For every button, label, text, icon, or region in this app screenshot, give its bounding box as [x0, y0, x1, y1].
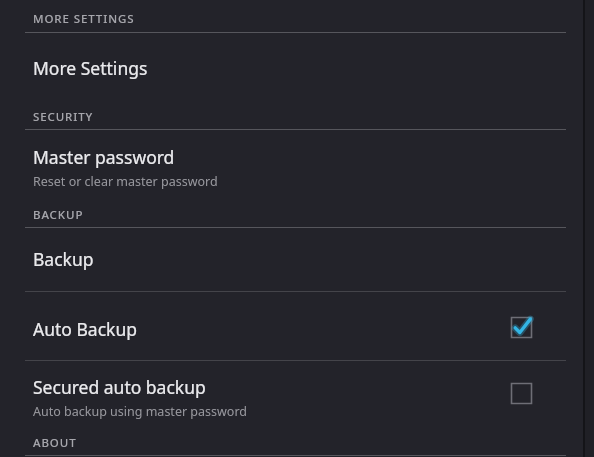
button[interactable]: Backup [0, 228, 594, 291]
staticText: Auto Backup [33, 317, 137, 341]
staticText: MORE SETTINGS [33, 11, 135, 27]
button[interactable]: Auto Backup [0, 292, 594, 360]
button[interactable]: Secured auto backup [0, 361, 594, 429]
staticText: SECURITY [33, 109, 94, 125]
button[interactable]: More Settings [0, 33, 594, 104]
other: Secured auto backup disabled [511, 383, 532, 404]
staticText: Backup [33, 247, 94, 271]
other: Auto Backup enabled [511, 317, 532, 338]
staticText: BACKUP [33, 207, 84, 223]
staticText: Secured auto backup [33, 375, 206, 399]
staticText: Reset or clear master password [33, 173, 218, 190]
staticText: Master password [33, 145, 175, 169]
staticText: ABOUT [33, 435, 77, 451]
button[interactable]: Master password [0, 130, 594, 200]
staticText: Auto backup using master password [33, 403, 248, 420]
staticText: More Settings [33, 56, 148, 80]
